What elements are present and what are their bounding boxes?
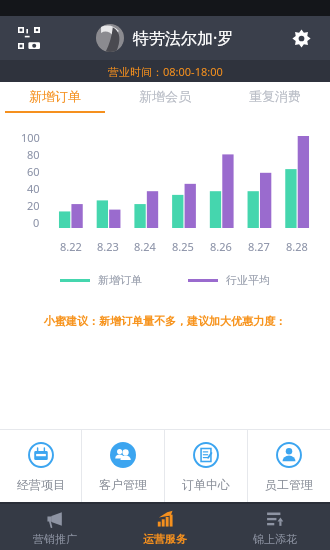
staticText: 0 (33, 215, 40, 230)
staticText: 营业时间：08:00-18:00 (108, 64, 223, 79)
button[interactable]: 经营项目 (0, 430, 81, 502)
staticText: 8.25 (172, 239, 194, 254)
staticText: 8.23 (97, 239, 119, 254)
button[interactable]: Settings (286, 23, 316, 53)
button[interactable]: 新增订单 (0, 82, 110, 118)
staticText: 员工管理 (265, 477, 313, 492)
button[interactable]: 营销推广 (0, 504, 110, 550)
button[interactable]: 新增会员 (110, 82, 220, 118)
button[interactable]: Scan QR code (14, 23, 44, 53)
staticText: 100 (21, 130, 40, 145)
staticText: 8.27 (248, 239, 270, 254)
staticText: 行业平均 (226, 273, 270, 287)
staticText: 特劳法尔加·罗 (133, 27, 234, 49)
staticText: 客户管理 (99, 477, 147, 492)
staticText: 40 (27, 181, 40, 196)
staticText: 新增订单 (29, 88, 81, 104)
staticText: 20 (27, 198, 40, 213)
button[interactable]: 客户管理 (82, 430, 164, 502)
button[interactable]: 订单中心 (165, 430, 247, 502)
button[interactable]: 重复消费 (220, 82, 330, 118)
staticText: 新增订单 (98, 273, 142, 287)
staticText: 营销推广 (33, 532, 77, 546)
staticText: 8.26 (210, 239, 232, 254)
staticText: 锦上添花 (253, 532, 297, 546)
staticText: 小蜜建议：新增订单量不多，建议加大优惠力度： (44, 314, 286, 328)
staticText: 经营项目 (17, 477, 65, 492)
button[interactable]: 锦上添花 (220, 504, 330, 550)
staticText: 订单中心 (182, 477, 230, 492)
staticText: 运营服务 (143, 532, 187, 546)
staticText: 80 (27, 147, 40, 162)
staticText: 8.28 (286, 239, 308, 254)
staticText: 8.22 (60, 239, 82, 254)
staticText: 60 (27, 164, 40, 179)
button[interactable]: 员工管理 (248, 430, 330, 502)
button[interactable]: 运营服务 (110, 504, 220, 550)
staticText: 重复消费 (249, 88, 301, 104)
staticText: 8.24 (134, 239, 156, 254)
staticText: 新增会员 (139, 88, 191, 104)
